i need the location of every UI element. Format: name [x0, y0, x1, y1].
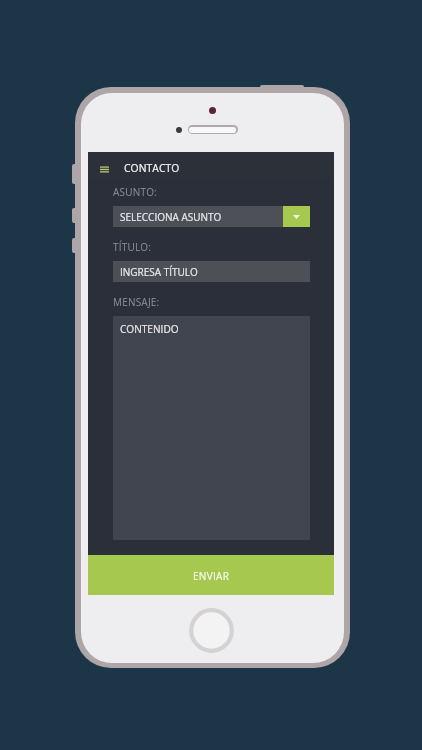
button[interactable]: CONTACTO [124, 161, 180, 175]
staticText: CONTACTO [124, 161, 180, 175]
staticText: ASUNTO: [113, 185, 157, 199]
button[interactable]: CONTENIDO [113, 316, 310, 540]
button[interactable]: SELECCIONA ASUNTO [113, 206, 310, 227]
button[interactable]: INGRESA TÍTULO [113, 261, 310, 282]
staticText: SELECCIONA ASUNTO [120, 210, 222, 224]
button[interactable]: Open navigation menu [95, 160, 114, 179]
staticText: ENVIAR [193, 569, 230, 583]
button[interactable]: ENVIAR [88, 555, 334, 595]
staticText: MENSAJE: [113, 295, 160, 309]
staticText: TÍTULO: [113, 240, 152, 254]
staticText: INGRESA TÍTULO [120, 265, 198, 279]
staticText: CONTENIDO [120, 322, 179, 336]
